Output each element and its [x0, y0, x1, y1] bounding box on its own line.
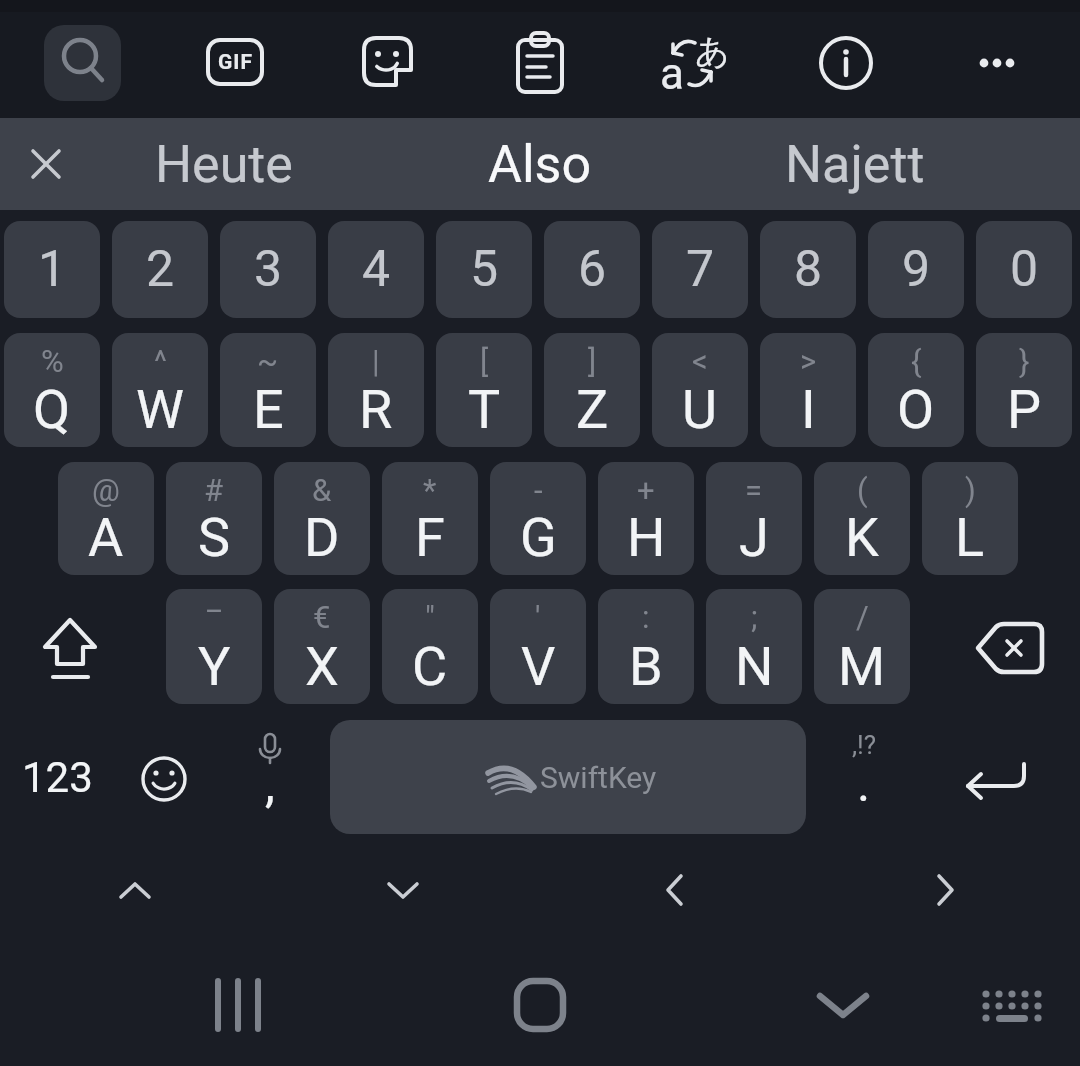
button[interactable]: >	[760, 333, 856, 447]
button[interactable]	[24, 600, 116, 692]
button[interactable]	[955, 742, 1039, 814]
staticText: R	[359, 378, 393, 441]
button[interactable]	[514, 30, 566, 94]
button[interactable]: )	[922, 462, 1018, 575]
button[interactable]: a	[650, 26, 730, 100]
button[interactable]: Heute	[90, 118, 357, 210]
button[interactable]: 123	[10, 735, 105, 820]
staticText: 8	[794, 240, 823, 299]
staticText: T	[468, 378, 501, 441]
button[interactable]	[958, 40, 1042, 86]
button[interactable]	[803, 965, 883, 1045]
button[interactable]	[198, 965, 278, 1045]
button[interactable]: ,!?	[826, 722, 902, 832]
button[interactable]: ,	[232, 722, 308, 832]
button[interactable]: SwiftKey	[330, 720, 806, 834]
button[interactable]: |	[328, 333, 424, 447]
staticText: V	[521, 635, 556, 698]
button[interactable]: }	[976, 333, 1072, 447]
staticText: あ	[695, 30, 730, 73]
button[interactable]	[645, 860, 705, 920]
button[interactable]	[20, 140, 72, 188]
staticText: "	[425, 599, 435, 635]
button[interactable]: ;	[706, 589, 802, 704]
button[interactable]: 8	[760, 221, 856, 318]
button[interactable]: 2	[112, 221, 208, 318]
button[interactable]: €	[274, 589, 370, 704]
button[interactable]: "	[382, 589, 478, 704]
staticText: #	[204, 472, 224, 508]
staticText: /	[856, 599, 869, 635]
button[interactable]: 1	[4, 221, 100, 318]
button[interactable]: 5	[436, 221, 532, 318]
staticText: |	[372, 343, 380, 379]
button[interactable]: #	[166, 462, 262, 575]
button[interactable]: @	[58, 462, 154, 575]
button[interactable]: +	[598, 462, 694, 575]
button[interactable]: :	[598, 589, 694, 704]
staticText: 1	[38, 240, 67, 299]
button[interactable]: Also	[402, 118, 678, 210]
staticText: P	[1007, 378, 1042, 441]
staticText: [	[480, 343, 489, 379]
button[interactable]: 4	[328, 221, 424, 318]
button[interactable]: ^	[112, 333, 208, 447]
staticText: 0	[1010, 240, 1039, 299]
staticText: @	[92, 472, 120, 508]
button[interactable]: ]	[544, 333, 640, 447]
button[interactable]: [	[436, 333, 532, 447]
button[interactable]: {	[868, 333, 964, 447]
staticText: 7	[686, 240, 715, 299]
staticText: M	[838, 635, 886, 698]
staticText: D	[304, 506, 340, 569]
staticText: B	[629, 635, 663, 698]
button[interactable]: 0	[976, 221, 1072, 318]
button[interactable]: GIF	[206, 38, 264, 86]
staticText: Z	[576, 378, 609, 441]
button[interactable]: '	[490, 589, 586, 704]
button[interactable]	[138, 753, 190, 805]
staticText: (	[857, 472, 868, 508]
button[interactable]: /	[814, 589, 910, 704]
staticText: >	[800, 343, 817, 379]
button[interactable]	[915, 860, 975, 920]
staticText: A	[88, 506, 124, 569]
button[interactable]	[500, 965, 580, 1045]
staticText: ]	[588, 343, 597, 379]
button[interactable]	[362, 36, 414, 88]
button[interactable]	[373, 860, 433, 920]
button[interactable]	[971, 965, 1051, 1045]
staticText: Q	[33, 378, 71, 441]
staticText: ,!?	[852, 730, 877, 760]
button[interactable]: Najett	[723, 118, 987, 210]
staticText: '	[535, 599, 541, 635]
button[interactable]: =	[706, 462, 802, 575]
button[interactable]: -	[490, 462, 586, 575]
button[interactable]: *	[382, 462, 478, 575]
button[interactable]	[818, 35, 874, 91]
button[interactable]: 3	[220, 221, 316, 318]
button[interactable]	[105, 860, 165, 920]
button[interactable]: 6	[544, 221, 640, 318]
staticText: Najett	[785, 134, 925, 195]
staticText: ;	[751, 599, 758, 635]
button[interactable]: &	[274, 462, 370, 575]
button[interactable]: 7	[652, 221, 748, 318]
button[interactable]	[44, 25, 121, 101]
button[interactable]: ~	[220, 333, 316, 447]
staticText: %	[41, 343, 64, 379]
button[interactable]: _	[166, 589, 262, 704]
staticText: =	[745, 472, 763, 508]
button[interactable]: <	[652, 333, 748, 447]
staticText: {	[911, 343, 922, 379]
staticText: 2	[146, 240, 175, 299]
button[interactable]: (	[814, 462, 910, 575]
staticText: L	[955, 506, 985, 569]
button[interactable]	[968, 614, 1058, 682]
staticText: H	[627, 506, 666, 569]
staticText: :	[642, 599, 650, 635]
staticText: <	[692, 343, 708, 379]
button[interactable]: 9	[868, 221, 964, 318]
staticText: *	[423, 472, 437, 508]
button[interactable]: %	[4, 333, 100, 447]
